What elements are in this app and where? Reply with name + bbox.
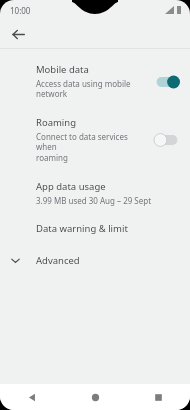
staticText: Mobile data bbox=[36, 63, 89, 76]
button[interactable]: Toggle off bbox=[154, 133, 180, 147]
staticText: Connect to data services when roaming bbox=[36, 131, 148, 164]
button[interactable]: Advanced bbox=[0, 243, 190, 277]
button[interactable]: Data warning & limit bbox=[0, 214, 190, 243]
button[interactable]: Roaming bbox=[0, 108, 190, 172]
staticText: App data usage bbox=[36, 180, 106, 193]
button[interactable]: Back bbox=[0, 384, 64, 410]
button[interactable]: Toggle on bbox=[154, 75, 180, 89]
staticText: 10:00 bbox=[10, 5, 31, 16]
staticText: 3.99 MB used 30 Aug – 29 Sept bbox=[36, 195, 152, 206]
button[interactable]: Navigate up bbox=[6, 22, 30, 46]
button[interactable]: App data usage bbox=[0, 172, 190, 214]
button[interactable]: Home bbox=[64, 384, 127, 410]
button[interactable]: Mobile data bbox=[0, 55, 190, 108]
staticText: Access data using mobile network bbox=[36, 78, 131, 100]
staticText: Data warning & limit bbox=[36, 222, 128, 235]
staticText: Roaming bbox=[36, 116, 77, 129]
staticText: Advanced bbox=[36, 254, 80, 267]
button[interactable]: Recent apps bbox=[127, 384, 190, 410]
